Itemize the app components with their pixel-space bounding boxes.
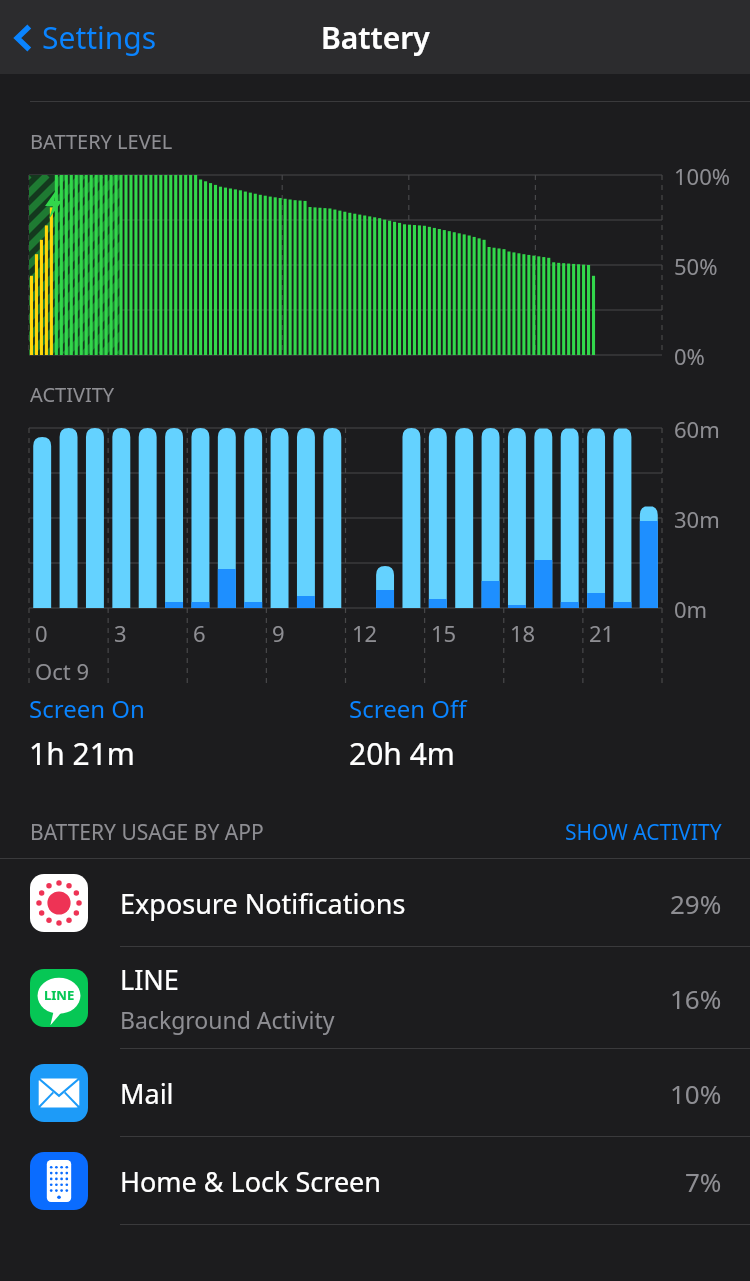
staticText: 1h 21m xyxy=(29,733,135,774)
staticText: Battery xyxy=(321,17,430,58)
staticText: 3 xyxy=(114,618,127,648)
staticText: 6 xyxy=(193,618,206,648)
staticText: 0m xyxy=(674,594,708,624)
staticText: SHOW ACTIVITY xyxy=(565,818,722,847)
staticText: 12 xyxy=(352,618,378,648)
staticText: 18 xyxy=(510,618,536,648)
staticText: LINE xyxy=(120,961,179,998)
staticText: Settings xyxy=(42,17,157,58)
staticText: 100% xyxy=(674,161,731,191)
button[interactable]: LINE xyxy=(0,947,750,1049)
staticText: 21 xyxy=(589,618,615,648)
staticText: Home & Lock Screen xyxy=(120,1163,382,1200)
staticText: 50% xyxy=(674,251,718,281)
button[interactable]: Home & Lock Screen xyxy=(0,1137,750,1225)
staticText: LINE xyxy=(44,986,75,1004)
staticText: ACTIVITY xyxy=(30,381,115,408)
staticText: 29% xyxy=(670,886,722,921)
staticText: 16% xyxy=(670,981,722,1016)
staticText: 0% xyxy=(674,341,705,371)
staticText: 15 xyxy=(431,618,457,648)
staticText: 9 xyxy=(272,618,285,648)
button[interactable]: Mail xyxy=(0,1049,750,1137)
staticText: 60m xyxy=(674,414,720,444)
button[interactable]: SHOW ACTIVITY xyxy=(565,818,750,847)
staticText: Mail xyxy=(120,1075,174,1112)
staticText: 20h 4m xyxy=(349,733,455,774)
button[interactable]: Settings xyxy=(12,17,157,58)
staticText: 7% xyxy=(685,1164,722,1199)
staticText: Screen Off xyxy=(349,692,467,725)
staticText: 0 xyxy=(35,618,48,648)
staticText: 30m xyxy=(674,504,720,534)
staticText: Background Activity xyxy=(120,1004,335,1035)
staticText: BATTERY LEVEL xyxy=(30,128,173,155)
button[interactable]: Exposure Notifications xyxy=(0,859,750,947)
staticText: Screen On xyxy=(29,692,145,725)
staticText: BATTERY USAGE BY APP xyxy=(30,818,264,847)
staticText: 10% xyxy=(670,1076,722,1111)
staticText: Oct 9 xyxy=(35,656,89,686)
staticText: Exposure Notifications xyxy=(120,885,406,922)
